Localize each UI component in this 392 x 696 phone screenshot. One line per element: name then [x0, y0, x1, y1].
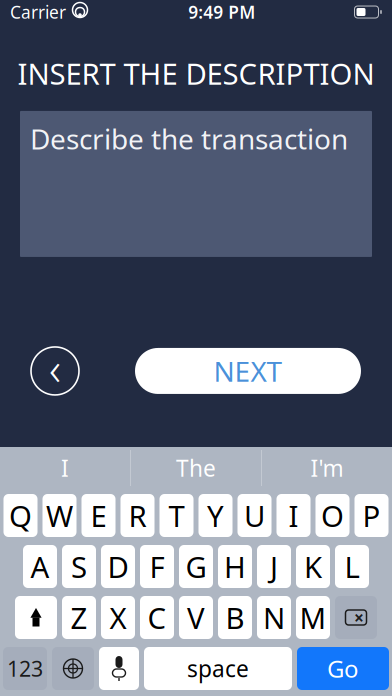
staticText: L	[344, 547, 359, 586]
button[interactable]: 123	[3, 647, 47, 690]
staticText: Carrier	[10, 0, 66, 23]
staticText: 123	[7, 654, 43, 683]
button[interactable]: Z	[62, 596, 96, 639]
button[interactable]: R	[120, 494, 154, 537]
button[interactable]: space	[144, 647, 292, 690]
staticText: M	[299, 598, 326, 637]
button[interactable]: Next keyboard	[52, 647, 94, 690]
button[interactable]: J	[257, 545, 291, 588]
button[interactable]: Q	[3, 494, 37, 537]
staticText: ×	[354, 606, 364, 629]
staticText: T	[168, 496, 184, 535]
button[interactable]: F	[140, 545, 174, 588]
button[interactable]: X	[101, 596, 135, 639]
button[interactable]: T	[159, 494, 193, 537]
staticText: A	[30, 547, 49, 586]
button[interactable]: Shift	[15, 596, 57, 639]
button[interactable]: A	[23, 545, 57, 588]
button[interactable]: C	[140, 596, 174, 639]
staticText: Y	[207, 496, 224, 535]
staticText: P	[362, 496, 380, 535]
button[interactable]: E	[81, 494, 115, 537]
button[interactable]: P	[354, 494, 388, 537]
staticText: Z	[70, 598, 87, 637]
button[interactable]: B	[218, 596, 252, 639]
button[interactable]: K	[296, 545, 330, 588]
staticText: B	[225, 598, 244, 637]
button[interactable]: The	[131, 447, 261, 489]
staticText: I	[288, 496, 298, 535]
staticText: 9:49 PM	[188, 0, 255, 23]
button[interactable]: Dictate	[99, 647, 139, 690]
staticText: NEXT	[213, 352, 282, 390]
staticText: R	[128, 496, 146, 535]
staticText: I	[61, 453, 69, 483]
button[interactable]: Back	[31, 347, 79, 395]
staticText: W	[46, 496, 73, 535]
staticText: Describe the transaction	[30, 120, 348, 157]
staticText: Go	[327, 653, 359, 684]
staticText: INSERT THE DESCRIPTION	[17, 54, 374, 93]
button[interactable]: I	[0, 447, 130, 489]
button[interactable]: Delete	[335, 596, 377, 639]
button[interactable]: U	[237, 494, 271, 537]
staticText: The	[176, 453, 216, 483]
staticText: C	[147, 598, 166, 637]
staticText: X	[109, 598, 126, 637]
button[interactable]: W	[42, 494, 76, 537]
button[interactable]: I	[276, 494, 310, 537]
button[interactable]: M	[296, 596, 330, 639]
button[interactable]: Go	[297, 647, 389, 690]
staticText: U	[244, 496, 265, 535]
button[interactable]: O	[315, 494, 349, 537]
staticText: V	[187, 598, 205, 637]
staticText: S	[71, 547, 87, 586]
staticText: O	[321, 496, 344, 535]
button[interactable]: S	[62, 545, 96, 588]
staticText: D	[107, 547, 128, 586]
button[interactable]: G	[179, 545, 213, 588]
staticText: ‹	[49, 338, 61, 398]
staticText: Q	[9, 496, 32, 535]
button[interactable]: NEXT	[135, 348, 361, 394]
staticText: space	[187, 653, 249, 683]
staticText: G	[185, 547, 206, 586]
staticText: E	[90, 496, 106, 535]
staticText: F	[149, 547, 164, 586]
staticText: K	[304, 547, 322, 586]
button[interactable]: L	[335, 545, 369, 588]
button[interactable]: D	[101, 545, 135, 588]
staticText: N	[263, 598, 285, 637]
staticText: J	[270, 547, 278, 586]
staticText: H	[224, 547, 246, 586]
button[interactable]: H	[218, 545, 252, 588]
staticText: I'm	[310, 453, 343, 483]
button[interactable]: Y	[198, 494, 232, 537]
button[interactable]: N	[257, 596, 291, 639]
button[interactable]: I'm	[262, 447, 392, 489]
button[interactable]: V	[179, 596, 213, 639]
